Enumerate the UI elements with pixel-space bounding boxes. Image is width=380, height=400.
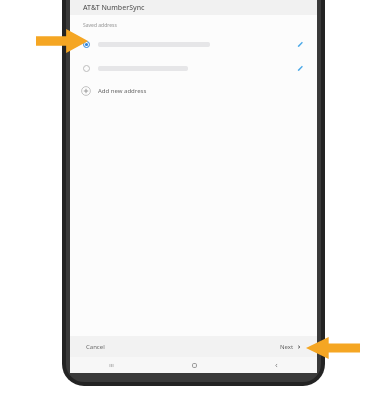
button[interactable]: Cancel xyxy=(84,340,107,354)
button[interactable]: Edit address xyxy=(70,35,317,53)
button[interactable]: Recents xyxy=(70,357,153,373)
button[interactable]: Back xyxy=(235,357,317,373)
staticText: Cancel xyxy=(86,343,105,351)
staticText: Saved address xyxy=(83,22,117,29)
button[interactable]: Edit address xyxy=(70,59,317,77)
button[interactable]: Add new address xyxy=(70,81,317,101)
button[interactable]: Edit address xyxy=(294,38,306,50)
staticText: AT&T NumberSync xyxy=(83,3,145,13)
staticText: Add new address xyxy=(98,87,147,95)
staticText: Next xyxy=(280,343,294,351)
button[interactable]: Next xyxy=(278,340,303,354)
button[interactable]: Edit address xyxy=(294,62,306,74)
button[interactable]: Home xyxy=(153,357,235,373)
